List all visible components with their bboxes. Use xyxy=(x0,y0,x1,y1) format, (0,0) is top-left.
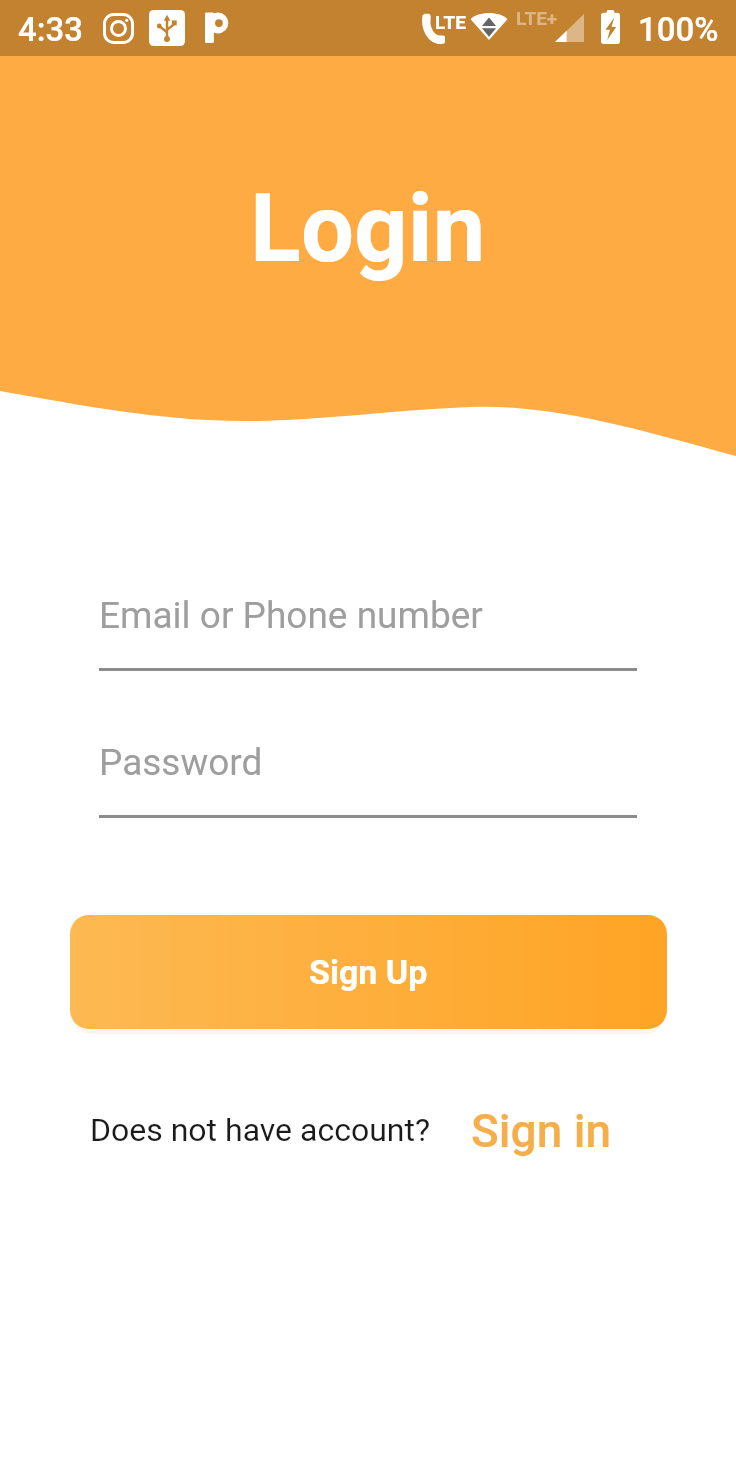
staticText: LTE+ xyxy=(516,7,558,29)
staticText: Sign Up xyxy=(309,952,428,992)
staticText: Email or Phone number xyxy=(99,594,483,637)
button[interactable]: Sign in xyxy=(471,1104,612,1158)
staticText: Sign in xyxy=(471,1104,612,1158)
staticText: LTE xyxy=(435,11,466,33)
staticText: 4:33 xyxy=(18,10,84,49)
staticText: Does not have account? xyxy=(90,1111,431,1149)
staticText: Password xyxy=(99,741,263,784)
button[interactable]: Sign Up xyxy=(70,915,667,1029)
staticText: Login xyxy=(250,174,486,284)
button[interactable]: Password xyxy=(99,727,637,818)
staticText: 100% xyxy=(638,10,719,49)
button[interactable]: Email or Phone number xyxy=(99,580,637,671)
